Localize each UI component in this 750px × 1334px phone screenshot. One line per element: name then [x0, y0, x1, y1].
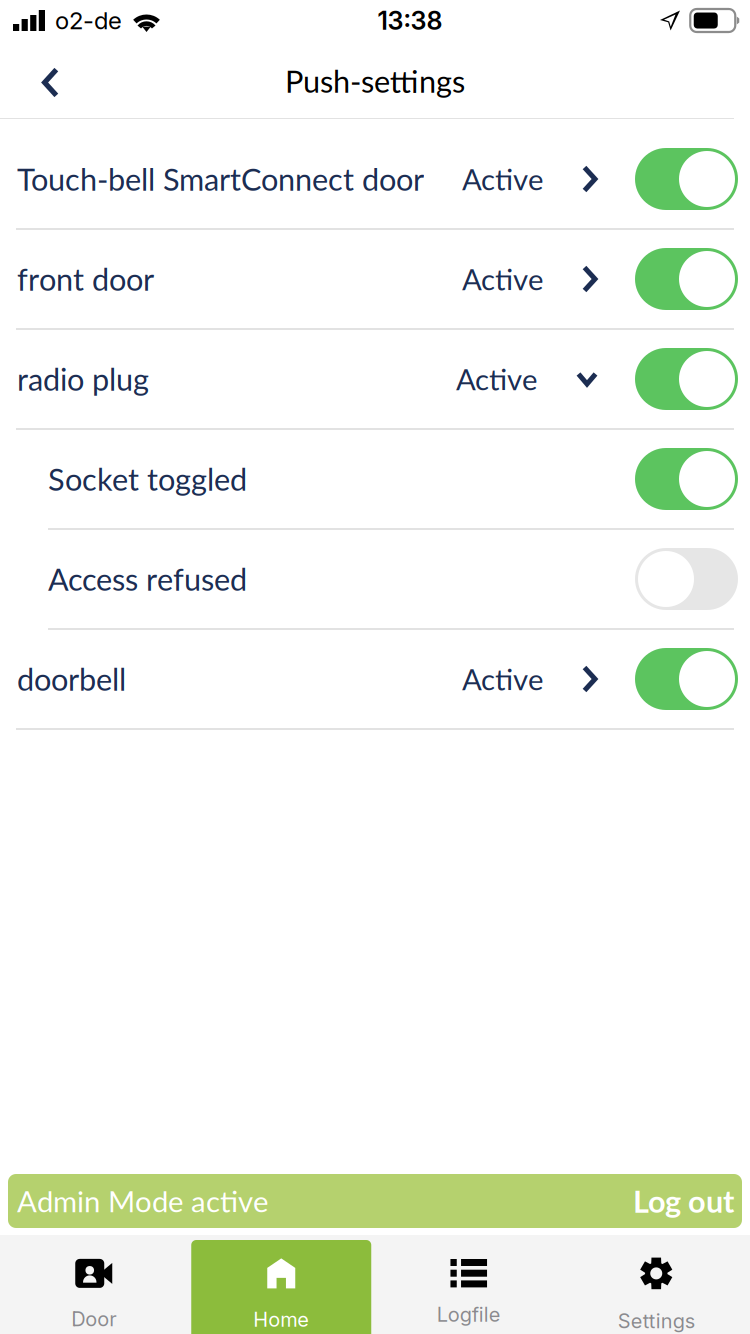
button[interactable]: Touch-bell SmartConnect door: [0, 130, 750, 228]
button[interactable]: Admin Mode active: [8, 1174, 742, 1228]
button[interactable]: Settings: [562, 1240, 750, 1334]
staticText: Active: [462, 261, 543, 297]
staticText: Touch-bell SmartConnect door: [17, 161, 424, 197]
staticText: Push-settings: [285, 63, 465, 99]
staticText: Home: [253, 1307, 309, 1332]
button[interactable]: Socket toggled: [0, 430, 750, 528]
staticText: Logfile: [437, 1302, 501, 1327]
staticText: Access refused: [48, 561, 247, 597]
staticText: Active: [462, 161, 543, 197]
staticText: Admin Mode active: [17, 1183, 268, 1219]
staticText: Active: [462, 661, 543, 697]
button[interactable]: radio plug: [0, 330, 750, 428]
button[interactable]: front door: [0, 230, 750, 328]
button[interactable]: Home: [187, 1240, 375, 1334]
staticText: Door: [71, 1307, 116, 1331]
staticText: doorbell: [17, 661, 126, 697]
button[interactable]: Door: [0, 1240, 187, 1334]
button[interactable]: doorbell: [0, 630, 750, 728]
staticText: Socket toggled: [48, 461, 247, 497]
staticText: front door: [17, 261, 154, 297]
staticText: 13:38: [377, 5, 442, 36]
staticText: radio plug: [17, 361, 149, 397]
button[interactable]: Access refused: [0, 530, 750, 628]
staticText: o2-de: [55, 6, 122, 35]
button[interactable]: Logfile: [375, 1240, 562, 1334]
staticText: Active: [456, 361, 537, 397]
staticText: Log out: [633, 1183, 734, 1219]
button[interactable]: Back: [0, 55, 750, 110]
staticText: Settings: [618, 1309, 695, 1333]
